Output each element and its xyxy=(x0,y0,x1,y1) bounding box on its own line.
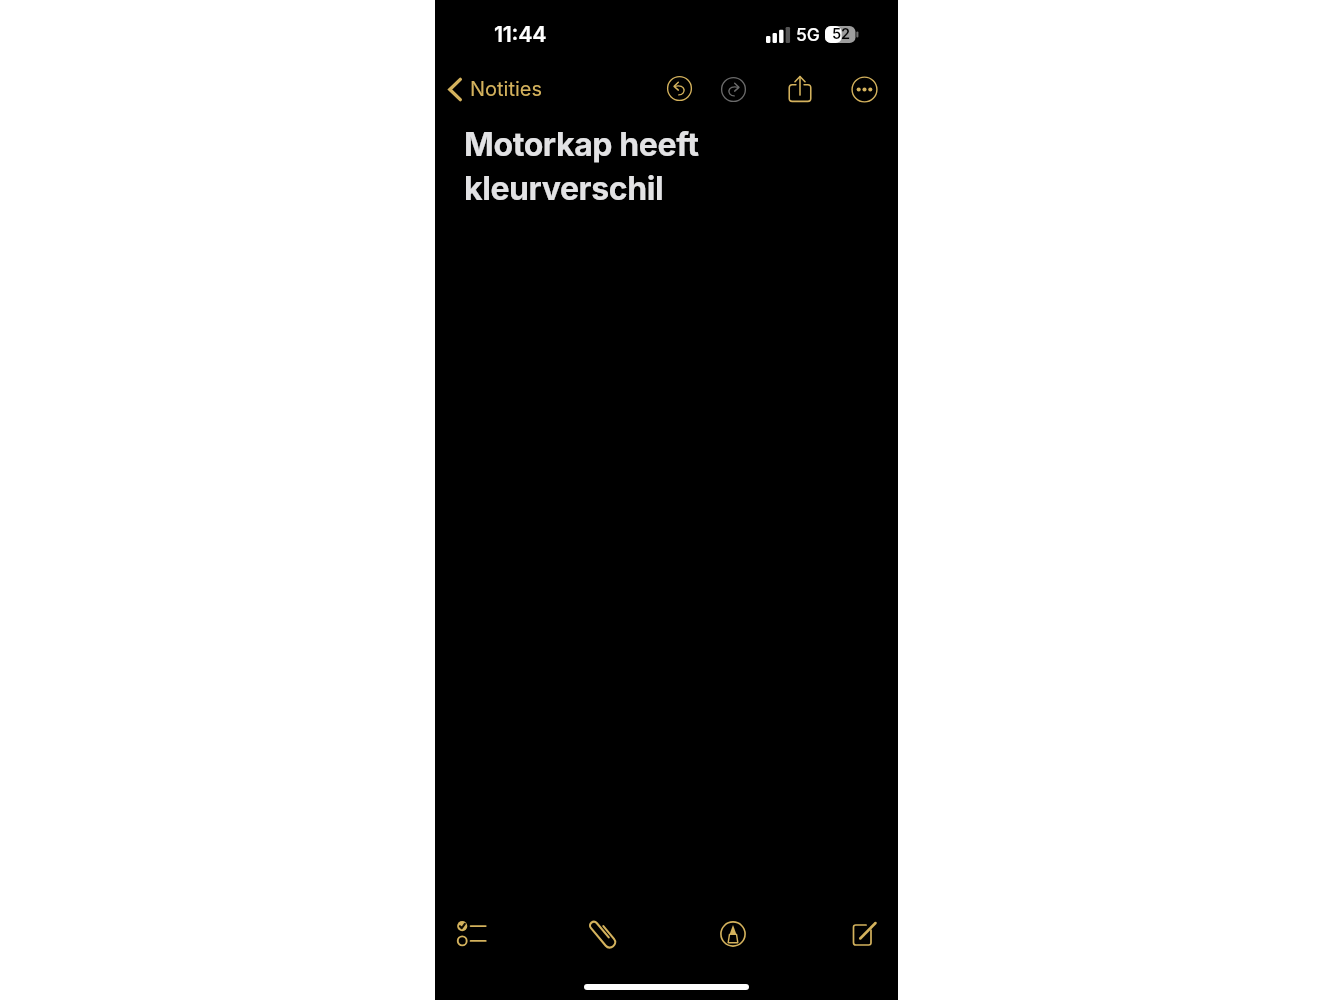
button[interactable]: Undo xyxy=(659,68,699,108)
staticText: Motorkap heeft kleurverschil xyxy=(464,125,699,208)
button[interactable]: Notities xyxy=(441,72,553,106)
button[interactable]: New note xyxy=(842,912,886,956)
staticText: 52 xyxy=(832,25,851,43)
staticText: Notities xyxy=(470,77,543,101)
button[interactable]: Redo xyxy=(713,69,753,109)
button[interactable]: Markup xyxy=(711,912,755,956)
button[interactable]: More options xyxy=(844,69,884,109)
staticText: 5G xyxy=(796,24,820,45)
button[interactable]: Share xyxy=(780,67,820,107)
button[interactable]: Checklist xyxy=(449,911,493,955)
button[interactable]: Attach file xyxy=(580,911,624,955)
staticText: 11:44 xyxy=(494,21,547,47)
